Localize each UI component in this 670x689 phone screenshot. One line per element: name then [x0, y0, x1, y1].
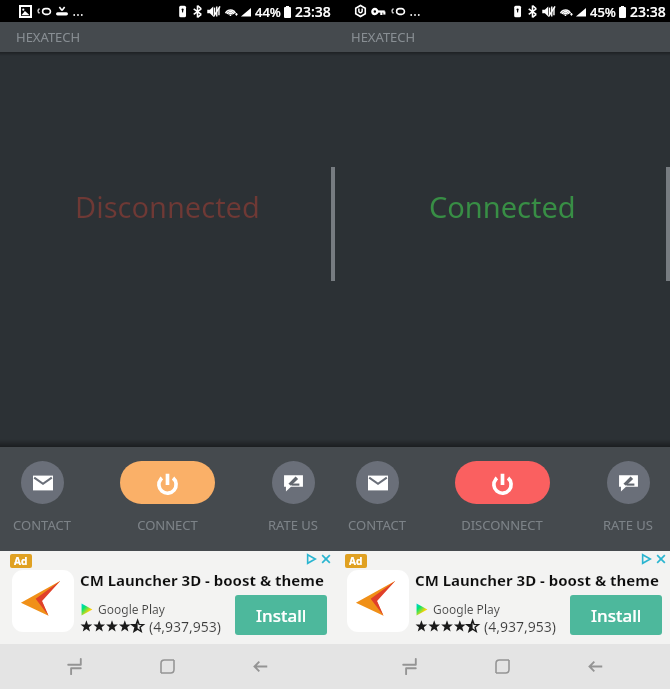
button[interactable]: Install — [235, 595, 327, 635]
staticText: Google Play — [98, 601, 165, 617]
other: Recents — [401, 658, 418, 675]
staticText: Connected — [429, 187, 576, 226]
button[interactable]: Rate us — [238, 461, 348, 534]
staticText: CONTACT — [13, 516, 71, 534]
staticText: CONNECT — [137, 516, 198, 534]
button[interactable]: Back — [549, 644, 642, 689]
button[interactable]: Recents — [28, 644, 121, 689]
other: Back — [253, 659, 268, 674]
staticText: 23:38 — [630, 2, 666, 21]
staticText: Ad — [349, 554, 363, 568]
staticText: Install — [256, 604, 307, 627]
staticText: 23:38 — [295, 2, 331, 21]
staticText: HEXATECH — [351, 28, 416, 46]
button[interactable]: Power — [112, 461, 222, 534]
button[interactable]: Install — [570, 595, 662, 635]
button[interactable]: Ad — [0, 551, 335, 644]
button[interactable]: Close ad — [655, 553, 667, 565]
staticText: Google Play — [433, 601, 500, 617]
button[interactable]: Recents — [363, 644, 456, 689]
button[interactable]: Contact — [0, 461, 97, 534]
other: Recents — [66, 658, 83, 675]
button[interactable]: Ad info — [640, 553, 652, 565]
other: Rate us — [283, 472, 304, 493]
button[interactable]: HEXATECH — [0, 22, 335, 52]
button[interactable]: Home — [121, 644, 214, 689]
button[interactable]: Home — [456, 644, 549, 689]
other: Rate us — [618, 472, 639, 493]
staticText: Ad — [14, 554, 28, 568]
staticText: RATE US — [603, 516, 653, 534]
other: Home — [496, 660, 509, 673]
other: Home — [161, 660, 174, 673]
other: Power — [157, 472, 178, 493]
other: Power — [492, 472, 513, 493]
staticText: CM Launcher 3D - boost & theme — [80, 570, 324, 590]
button[interactable]: Rate us — [573, 461, 670, 534]
staticText: HEXATECH — [16, 28, 81, 46]
staticText: DISCONNECT — [461, 516, 543, 534]
staticText: CONTACT — [348, 516, 406, 534]
staticText: CM Launcher 3D - boost & theme — [415, 570, 659, 590]
staticText: 45% — [590, 3, 616, 21]
button[interactable]: Ad info — [305, 553, 317, 565]
staticText: (4,937,953) — [149, 617, 221, 636]
button[interactable]: Power — [447, 461, 557, 534]
other: Contact — [33, 473, 53, 493]
button[interactable]: Ad — [335, 551, 670, 644]
staticText: 44% — [255, 3, 281, 21]
staticText: (4,937,953) — [484, 617, 556, 636]
other: Contact — [368, 473, 388, 493]
button[interactable]: HEXATECH — [335, 22, 670, 52]
button[interactable]: Close ad — [320, 553, 332, 565]
staticText: Disconnected — [75, 187, 260, 226]
other: Back — [588, 659, 603, 674]
button[interactable]: Back — [214, 644, 307, 689]
staticText: RATE US — [268, 516, 318, 534]
button[interactable]: Contact — [322, 461, 432, 534]
staticText: Install — [591, 604, 642, 627]
